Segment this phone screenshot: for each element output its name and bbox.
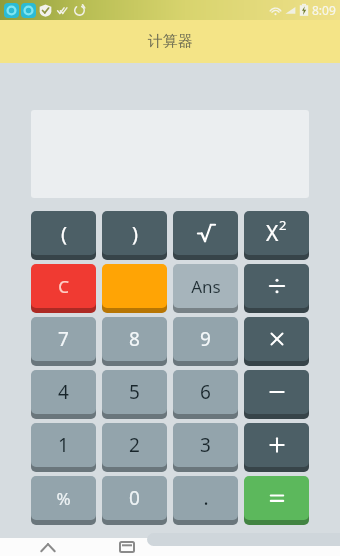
- button[interactable]: 0: [102, 476, 167, 523]
- staticText: %: [56, 487, 71, 510]
- staticText: Ans: [191, 275, 221, 298]
- button[interactable]: Divide: [244, 264, 309, 311]
- button[interactable]: Square: [244, 211, 309, 258]
- staticText: 3: [200, 432, 211, 458]
- button[interactable]: 7: [31, 317, 96, 364]
- button[interactable]: 3: [173, 423, 238, 470]
- staticText: .: [203, 485, 209, 511]
- staticText: 2: [279, 216, 287, 234]
- staticText: 8: [129, 326, 140, 352]
- staticText: 8:09: [312, 2, 336, 18]
- staticText: X: [266, 219, 279, 248]
- staticText: 1: [58, 432, 69, 458]
- staticText: C: [58, 275, 69, 298]
- button[interactable]: 2: [102, 423, 167, 470]
- staticText: 7: [58, 326, 69, 352]
- staticText: 6: [200, 379, 211, 405]
- button[interactable]: 4: [31, 370, 96, 417]
- button[interactable]: Multiply: [244, 317, 309, 364]
- button[interactable]: 9: [173, 317, 238, 364]
- button[interactable]: Equals: [244, 476, 309, 523]
- staticText: 2: [129, 432, 140, 458]
- button[interactable]: 1: [31, 423, 96, 470]
- staticText: (: [61, 220, 67, 247]
- button[interactable]: 6: [173, 370, 238, 417]
- button[interactable]: Back: [33, 538, 63, 556]
- staticText: 0: [129, 485, 140, 511]
- button[interactable]: Answer: [173, 264, 238, 311]
- button[interactable]: Recents: [112, 538, 142, 556]
- button[interactable]: Open parenthesis: [31, 211, 96, 258]
- button[interactable]: Close parenthesis: [102, 211, 167, 258]
- staticText: 4: [58, 379, 69, 405]
- staticText: 9: [200, 326, 211, 352]
- button[interactable]: Backspace: [102, 264, 167, 311]
- button[interactable]: Decimal point: [173, 476, 238, 523]
- button[interactable]: Add: [244, 423, 309, 470]
- button[interactable]: Clear: [31, 264, 96, 311]
- button[interactable]: Percent: [31, 476, 96, 523]
- staticText: 计算器: [148, 32, 193, 51]
- button[interactable]: Square root: [173, 211, 238, 258]
- button[interactable]: 5: [102, 370, 167, 417]
- button[interactable]: Subtract: [244, 370, 309, 417]
- staticText: 5: [129, 379, 140, 405]
- button[interactable]: 8: [102, 317, 167, 364]
- staticText: ): [132, 220, 138, 247]
